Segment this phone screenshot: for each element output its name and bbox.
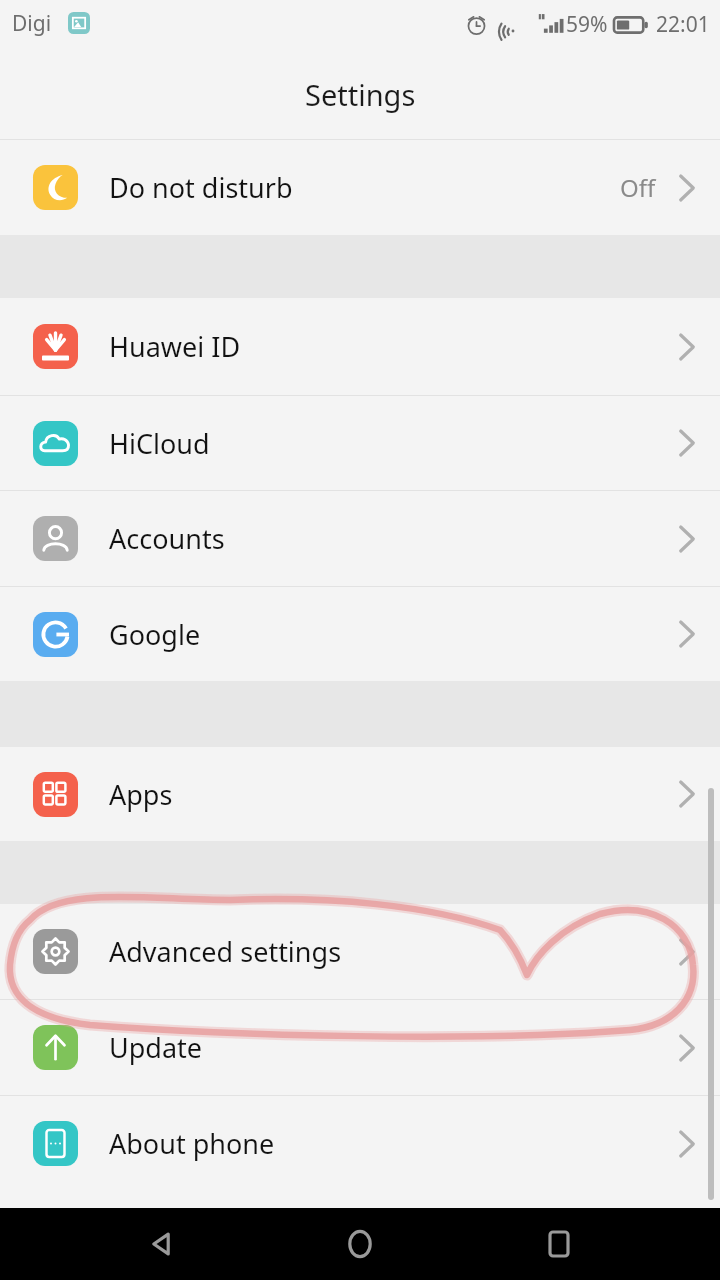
button[interactable]: Google (0, 587, 720, 681)
staticText: Huawei ID (109, 328, 241, 365)
button[interactable]: Apps (0, 747, 720, 841)
staticText: Update (109, 1029, 203, 1066)
staticText: HiCloud (109, 425, 210, 462)
button[interactable]: Accounts (0, 491, 720, 586)
staticText: Google (109, 616, 201, 653)
staticText: Do not disturb (109, 169, 293, 206)
button[interactable]: Back (123, 1208, 199, 1280)
staticText: 59% (566, 10, 608, 39)
staticText: About phone (109, 1125, 275, 1162)
button[interactable]: Home (322, 1208, 398, 1280)
button[interactable]: Huawei ID (0, 298, 720, 395)
button[interactable]: Advanced settings (0, 904, 720, 999)
staticText: Apps (109, 776, 173, 813)
staticText: 22:01 (656, 10, 710, 39)
staticText: Accounts (109, 520, 225, 557)
staticText: Off (620, 171, 656, 204)
staticText: Digi (12, 9, 52, 38)
staticText: Settings (305, 75, 416, 114)
button[interactable]: Update (0, 1000, 720, 1095)
button[interactable]: HiCloud (0, 396, 720, 490)
staticText: Advanced settings (109, 933, 342, 970)
button[interactable]: Recent apps (521, 1208, 597, 1280)
button[interactable]: Do not disturb (0, 140, 720, 235)
button[interactable]: About phone (0, 1096, 720, 1191)
